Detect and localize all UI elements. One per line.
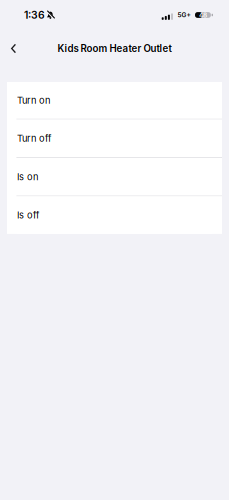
staticText: 48 xyxy=(199,11,207,19)
button[interactable]: Is off xyxy=(7,196,222,234)
button[interactable]: Is on xyxy=(7,158,222,195)
staticText: Is on xyxy=(17,171,38,182)
staticText: Turn off xyxy=(17,133,51,144)
staticText: 5G+ xyxy=(177,11,190,19)
staticText: Is off xyxy=(17,209,39,221)
button[interactable]: Turn on xyxy=(7,82,222,119)
button[interactable]: Turn off xyxy=(7,120,222,157)
staticText: Kids Room Heater Outlet xyxy=(57,43,171,54)
staticText: 1:36 xyxy=(24,9,45,21)
staticText: Turn on xyxy=(17,95,50,106)
button[interactable]: Back xyxy=(0,36,24,61)
